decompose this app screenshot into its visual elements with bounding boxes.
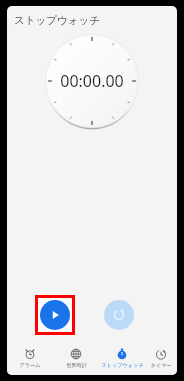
button[interactable]: リセット <box>104 300 134 330</box>
staticText: 00:00.00 <box>60 70 124 92</box>
button[interactable]: ストップウォッチ <box>99 341 145 375</box>
staticText: タイマー <box>150 362 172 369</box>
staticText: 世界時計 <box>66 362 87 369</box>
button[interactable]: 世界時計 <box>53 341 99 375</box>
staticText: アラーム <box>19 362 41 369</box>
button[interactable]: アラーム <box>7 341 53 375</box>
staticText: ストップウォッチ <box>14 14 100 27</box>
button[interactable]: 開始 <box>40 300 70 330</box>
staticText: ストップウォッチ <box>101 362 144 369</box>
button[interactable]: タイマー <box>145 341 177 375</box>
